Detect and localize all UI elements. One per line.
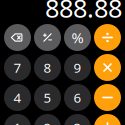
button[interactable]: 3 xyxy=(64,114,91,125)
staticText: 8 xyxy=(43,59,51,76)
staticText: 6 xyxy=(73,89,81,106)
staticText: 5 xyxy=(43,89,51,106)
button[interactable]: 9 xyxy=(64,54,91,81)
button[interactable]: Subtract xyxy=(94,84,121,111)
button[interactable]: 7 xyxy=(4,54,31,81)
staticText: 888.88 xyxy=(45,0,122,25)
button[interactable]: Add xyxy=(94,114,121,125)
staticText: 3 xyxy=(73,119,81,125)
button[interactable]: 1 xyxy=(4,114,31,125)
button[interactable]: 2 xyxy=(34,114,61,125)
button[interactable]: Divide xyxy=(94,24,121,51)
staticText: 1 xyxy=(13,119,21,125)
button[interactable]: Delete xyxy=(4,24,31,51)
button[interactable]: Multiply xyxy=(94,54,121,81)
button[interactable]: Plus Minus xyxy=(34,24,61,51)
button[interactable]: 5 xyxy=(34,84,61,111)
staticText: 2 xyxy=(43,119,51,125)
staticText: 7 xyxy=(13,59,21,76)
staticText: 9 xyxy=(73,59,81,76)
button[interactable]: Percent xyxy=(64,24,91,51)
staticText: % xyxy=(71,28,83,47)
button[interactable]: 4 xyxy=(4,84,31,111)
staticText: 4 xyxy=(13,89,21,106)
button[interactable]: 6 xyxy=(64,84,91,111)
button[interactable]: 8 xyxy=(34,54,61,81)
